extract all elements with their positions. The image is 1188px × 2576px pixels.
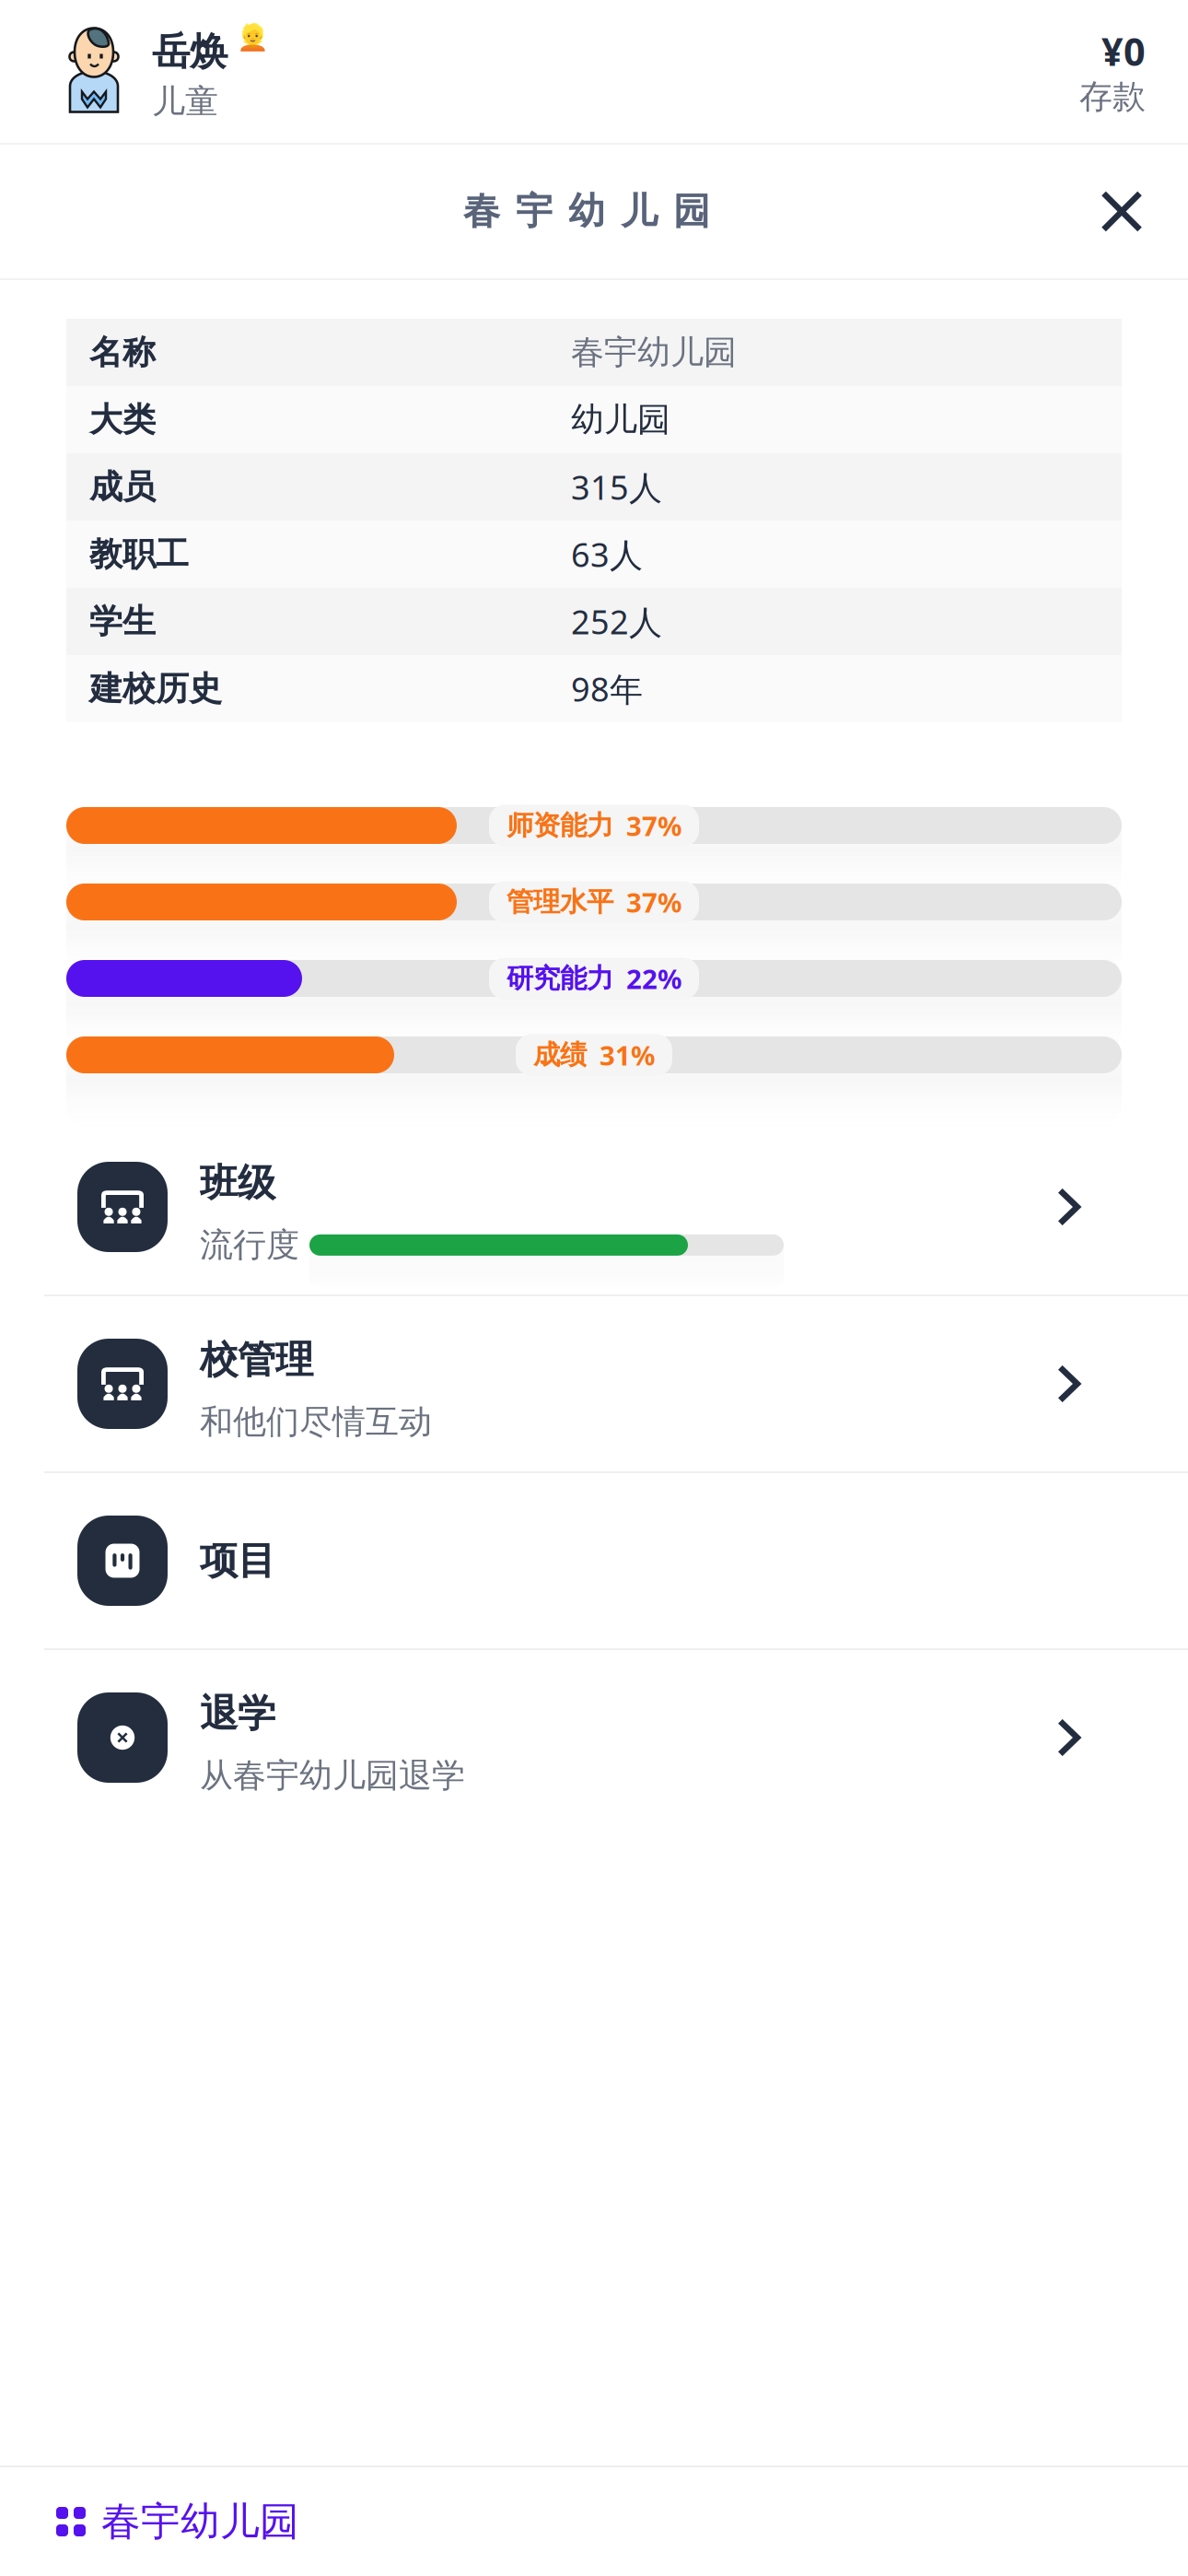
staticText: 管理水平	[507, 885, 613, 919]
staticText: 成员	[89, 467, 156, 507]
staticText: 项目	[200, 1537, 275, 1584]
button[interactable]: 班级	[0, 1119, 1188, 1294]
staticText: 37%	[626, 808, 681, 843]
staticText: 春宇幼儿园	[571, 332, 737, 373]
staticText: 儿童	[152, 81, 218, 122]
staticText: 班级	[200, 1159, 275, 1206]
staticText: 岳焕	[152, 28, 227, 75]
staticText: 37%	[626, 884, 681, 920]
button[interactable]: 项目	[0, 1473, 1188, 1648]
staticText: 幼儿园	[571, 399, 670, 440]
staticText: 98年	[571, 667, 643, 711]
staticText: 师资能力	[507, 809, 613, 842]
button[interactable]: 退学	[0, 1650, 1188, 1825]
button[interactable]: 春宇幼儿园	[0, 2467, 1188, 2576]
staticText: 教职工	[89, 534, 189, 575]
staticText: 名称	[89, 332, 156, 373]
staticText: 👱	[237, 23, 269, 52]
staticText: 从春宇幼儿园退学	[200, 1755, 465, 1796]
button[interactable]: Close	[1077, 166, 1167, 257]
staticText: 31%	[600, 1037, 655, 1073]
staticText: 春宇幼儿园	[463, 189, 710, 234]
staticText: 存款	[1079, 76, 1146, 117]
staticText: 22%	[626, 960, 681, 996]
button[interactable]: 校管理	[0, 1296, 1188, 1471]
staticText: 252人	[571, 599, 662, 643]
staticText: 315人	[571, 465, 662, 509]
staticText: 大类	[89, 399, 156, 440]
staticText: 建校历史	[89, 668, 222, 709]
staticText: 63人	[571, 532, 643, 576]
staticText: 成绩	[533, 1038, 587, 1071]
staticText: 和他们尽情互动	[200, 1402, 432, 1442]
staticText: 研究能力	[507, 962, 613, 995]
staticText: 流行度	[200, 1225, 299, 1265]
staticText: 春宇幼儿园	[101, 2498, 299, 2546]
staticText: ¥0	[1101, 26, 1146, 76]
staticText: 学生	[89, 601, 156, 642]
staticText: 退学	[200, 1690, 275, 1737]
staticText: 校管理	[200, 1336, 313, 1383]
